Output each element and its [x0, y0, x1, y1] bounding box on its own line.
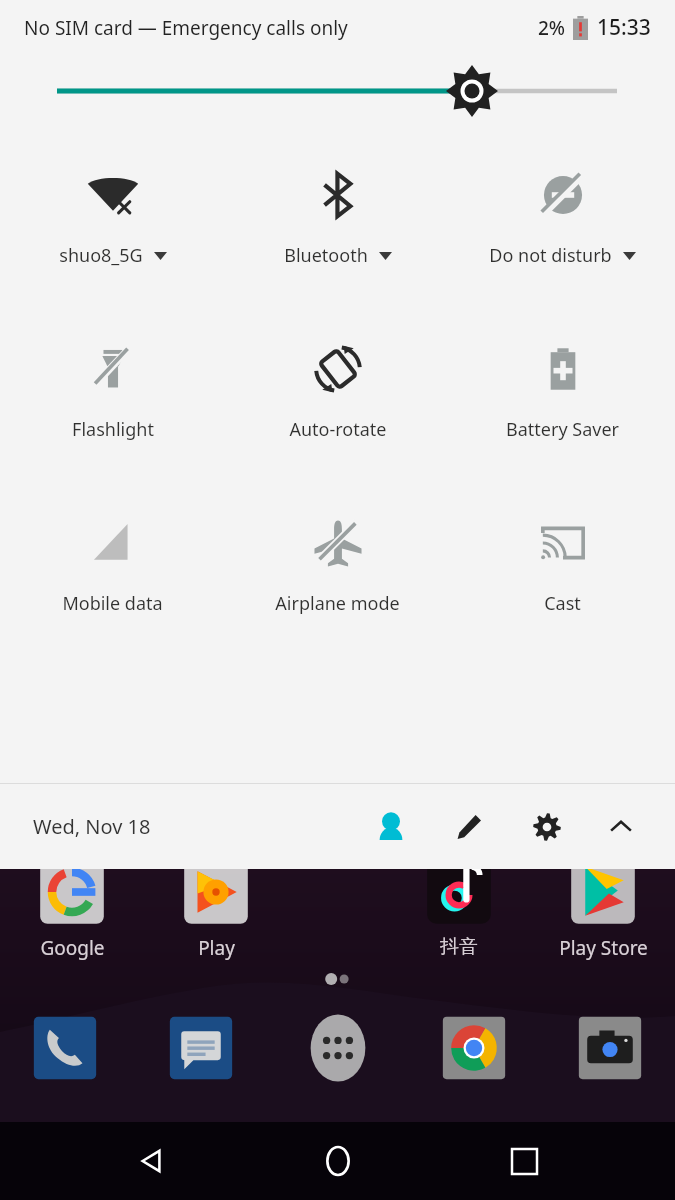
- button[interactable]: Chrome: [431, 1005, 517, 1091]
- staticText: Airplane mode: [275, 591, 400, 616]
- button[interactable]: Flashlight: [0, 341, 225, 442]
- staticText: 2%: [538, 15, 566, 41]
- staticText: Auto-rotate: [289, 417, 387, 442]
- button[interactable]: Do not disturb: [450, 167, 675, 268]
- button[interactable]: Airplane mode: [225, 515, 450, 616]
- button[interactable]: Recents: [489, 1126, 559, 1196]
- button[interactable]: 抖音: [387, 855, 531, 959]
- staticText: Flashlight: [72, 417, 154, 442]
- button[interactable]: Play Store: [531, 855, 675, 961]
- staticText: Wed, Nov 18: [33, 813, 151, 840]
- button[interactable]: Edit: [439, 797, 499, 857]
- staticText: Mobile data: [62, 591, 163, 616]
- button[interactable]: Phone: [22, 1005, 108, 1091]
- button[interactable]: Settings: [517, 797, 577, 857]
- staticText: Google: [40, 935, 105, 961]
- button[interactable]: Auto-rotate: [225, 341, 450, 442]
- staticText: 15:33: [597, 13, 651, 42]
- button[interactable]: Play: [144, 855, 288, 961]
- button[interactable]: Bluetooth: [225, 167, 450, 268]
- button[interactable]: User: [361, 797, 421, 857]
- button[interactable]: Messages: [158, 1005, 244, 1091]
- button[interactable]: Collapse: [591, 797, 651, 857]
- staticText: Do not disturb: [489, 243, 612, 268]
- button[interactable]: All apps: [295, 1005, 381, 1091]
- button[interactable]: Brightness: [0, 55, 675, 115]
- button[interactable]: Battery Saver: [450, 341, 675, 442]
- staticText: No SIM card — Emergency calls only: [24, 15, 348, 41]
- button[interactable]: Google: [0, 855, 144, 961]
- button[interactable]: Mobile data: [0, 515, 225, 616]
- button[interactable]: Home: [303, 1126, 373, 1196]
- staticText: Bluetooth: [284, 243, 368, 268]
- button[interactable]: Back: [116, 1126, 186, 1196]
- staticText: shuo8_5G: [59, 243, 143, 268]
- staticText: Battery Saver: [506, 417, 619, 442]
- staticText: 抖音: [440, 935, 478, 959]
- button[interactable]: Cast: [450, 515, 675, 616]
- button[interactable]: Camera: [567, 1005, 653, 1091]
- button[interactable]: shuo8_5G: [0, 167, 225, 268]
- staticText: Play Store: [559, 935, 648, 961]
- staticText: Play: [198, 935, 235, 961]
- staticText: Cast: [544, 591, 581, 616]
